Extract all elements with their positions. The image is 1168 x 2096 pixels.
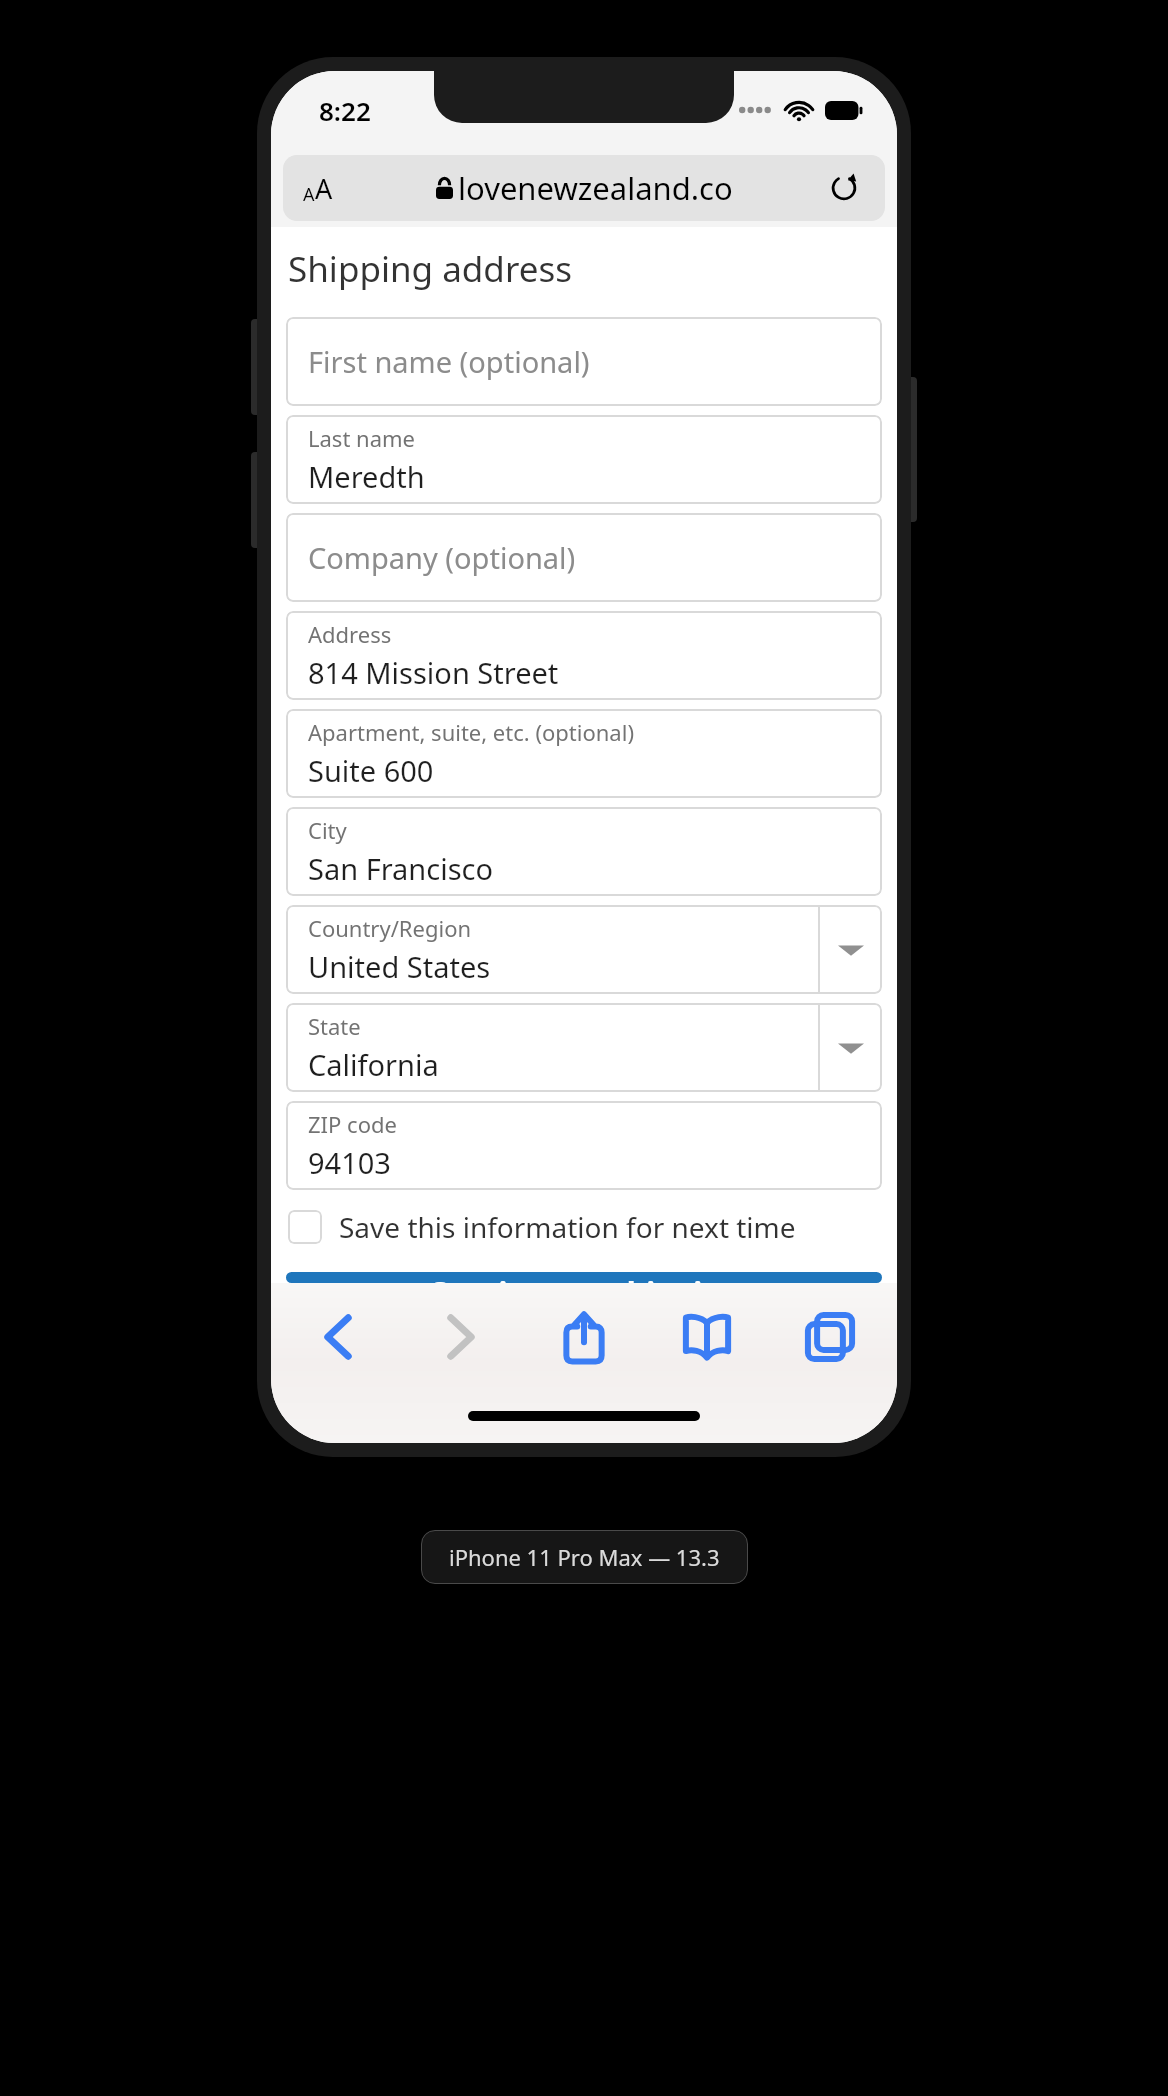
button[interactable]: ZIP code [286,1101,882,1190]
button[interactable]: Apartment, suite, etc. (optional) [286,709,882,798]
staticText: Meredth [308,457,425,496]
staticText: iPhone 11 Pro Max — 13.3 [449,1542,720,1572]
staticText: A [303,182,315,207]
staticText: Last name [308,423,415,453]
staticText: California [308,1045,439,1084]
button[interactable]: Tabs [791,1298,869,1376]
button[interactable]: Reload [825,169,863,207]
staticText: A [315,170,333,207]
button[interactable]: Save this information for next time [286,1204,882,1250]
button[interactable]: Share [545,1298,623,1376]
button[interactable]: Address [286,611,882,700]
button[interactable]: Continue to shipping [286,1272,882,1283]
staticText: Apartment, suite, etc. (optional) [308,717,634,747]
staticText: City [308,815,347,845]
button[interactable]: Bookmarks [668,1298,746,1376]
button[interactable]: Last name [286,415,882,504]
staticText: Country/Region [308,913,472,943]
button[interactable]: Text size [283,155,885,221]
button[interactable]: City [286,807,882,896]
other: Open menu [820,905,882,994]
staticText: ZIP code [308,1109,397,1139]
button[interactable]: State [286,1003,882,1092]
button[interactable]: Forward [422,1298,500,1376]
staticText: Save this information for next time [339,1208,796,1246]
button[interactable]: First name (optional) [286,317,882,406]
staticText: United States [308,947,491,986]
staticText: San Francisco [308,849,494,888]
other: Open menu [820,1003,882,1092]
staticText: State [308,1011,361,1041]
staticText: Address [308,619,392,649]
button[interactable]: Company (optional) [286,513,882,602]
staticText: Shipping address [288,245,572,293]
staticText: First name (optional) [308,342,590,381]
staticText: lovenewzealand.co [458,167,733,209]
button[interactable]: Back [299,1298,377,1376]
button[interactable]: Country/Region [286,905,882,994]
button[interactable]: Text size [303,170,333,207]
staticText: Suite 600 [308,751,434,790]
staticText: 8:22 [319,93,371,128]
staticText: 94103 [308,1143,391,1182]
staticText: 814 Mission Street [308,653,559,692]
staticText: Continue to shipping [428,1272,741,1283]
staticText: Company (optional) [308,538,576,577]
